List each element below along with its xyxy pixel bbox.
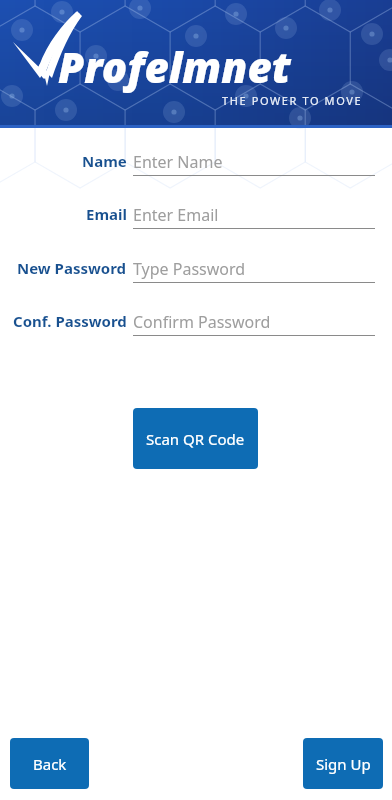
staticText: Name: [82, 151, 127, 171]
staticText: Confirm Password: [133, 311, 271, 333]
button[interactable]: Back: [10, 738, 89, 789]
staticText: Enter Name: [133, 151, 223, 173]
staticText: Scan QR Code: [146, 429, 245, 449]
staticText: New Password: [17, 258, 127, 278]
button[interactable]: Confirm Password: [133, 308, 375, 336]
staticText: Email: [86, 204, 127, 224]
staticText: Profelmnet: [58, 38, 291, 95]
button[interactable]: Sign Up: [303, 738, 383, 789]
staticText: THE POWER TO MOVE: [222, 93, 363, 108]
button[interactable]: Enter Email: [133, 201, 375, 229]
button[interactable]: Type Password: [133, 255, 375, 283]
staticText: Conf. Password: [13, 311, 127, 331]
staticText: Back: [33, 754, 67, 774]
staticText: Sign Up: [316, 754, 371, 774]
button[interactable]: Enter Name: [133, 148, 375, 176]
button[interactable]: Scan QR Code: [133, 408, 258, 469]
staticText: Enter Email: [133, 204, 219, 226]
staticText: Type Password: [133, 258, 246, 280]
